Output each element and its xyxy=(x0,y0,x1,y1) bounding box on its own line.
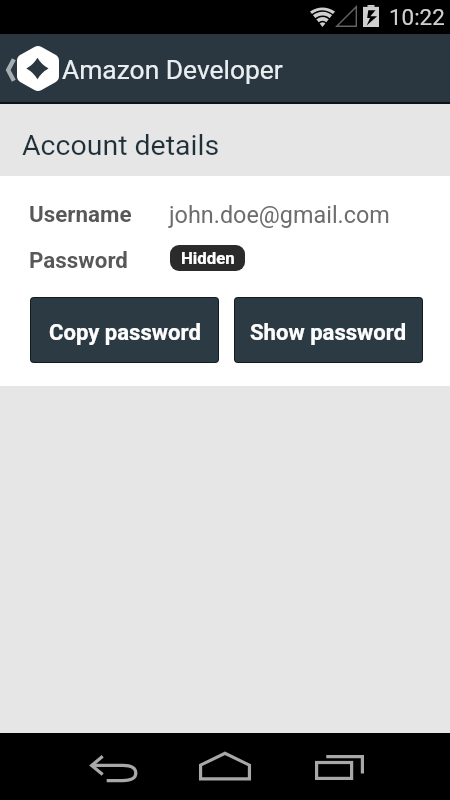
button[interactable]: Recent apps xyxy=(300,733,375,800)
button[interactable]: Show password xyxy=(235,298,422,362)
button[interactable]: Back xyxy=(0,34,17,102)
button[interactable]: Home xyxy=(187,733,262,800)
staticText: Account details xyxy=(22,129,220,162)
staticText: Password xyxy=(29,247,128,273)
staticText: Username xyxy=(29,201,132,227)
staticText: Hidden xyxy=(181,248,235,268)
button[interactable]: Hidden xyxy=(170,245,245,271)
button[interactable]: Copy password xyxy=(31,298,218,362)
staticText: 10:22 xyxy=(389,4,445,30)
staticText: Show password xyxy=(250,319,407,345)
staticText: Amazon Developer xyxy=(62,55,283,86)
staticText: Copy password xyxy=(49,319,201,345)
button[interactable]: Back xyxy=(75,733,150,800)
staticText: john.doe@gmail.com xyxy=(169,201,390,228)
